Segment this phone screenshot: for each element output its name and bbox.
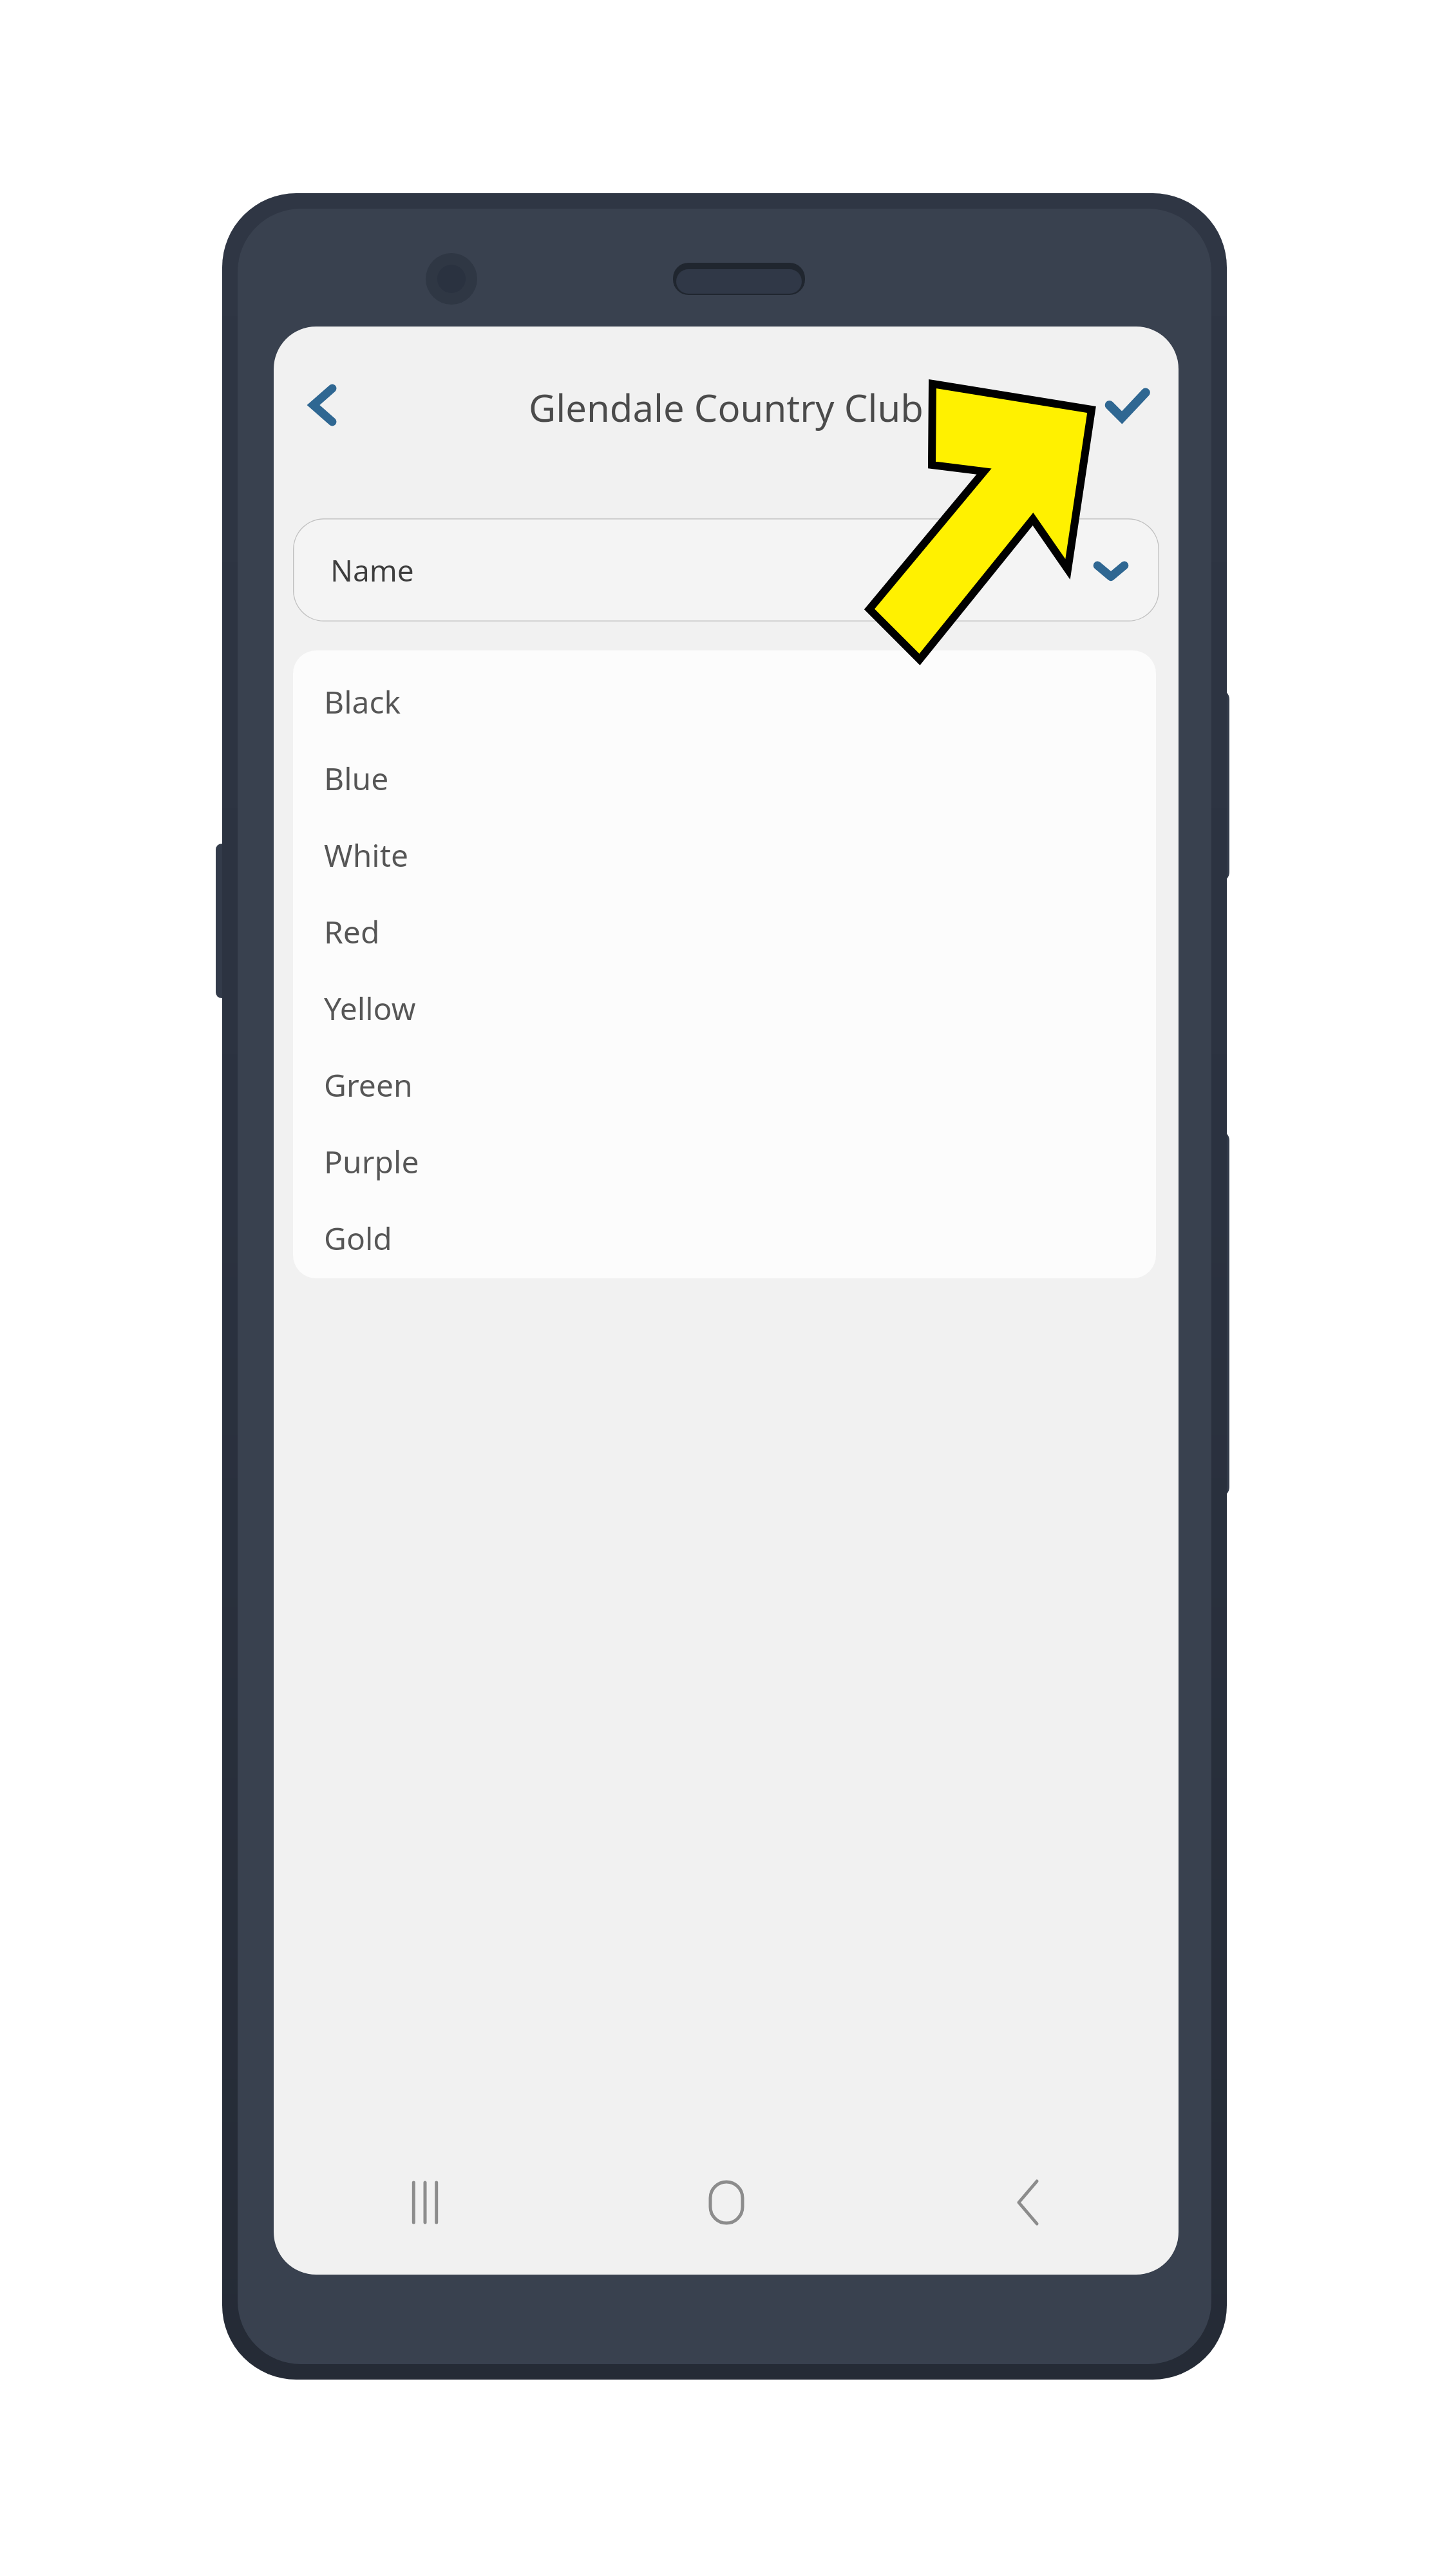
- staticText: Blue: [324, 757, 389, 799]
- staticText: Name: [330, 550, 414, 591]
- button[interactable]: White: [293, 817, 1156, 893]
- staticText: Red: [324, 911, 380, 952]
- button[interactable]: Green: [293, 1046, 1156, 1123]
- button[interactable]: Home: [576, 2130, 877, 2275]
- button[interactable]: Yellow: [293, 970, 1156, 1046]
- button[interactable]: Red: [293, 893, 1156, 970]
- staticText: Yellow: [324, 987, 416, 1029]
- button[interactable]: Back: [877, 2130, 1179, 2275]
- button[interactable]: Recent apps: [274, 2130, 576, 2275]
- button[interactable]: Back: [279, 360, 369, 450]
- staticText: Gold: [324, 1217, 392, 1259]
- button[interactable]: Gold: [293, 1200, 1156, 1276]
- staticText: Green: [324, 1064, 413, 1106]
- button[interactable]: Confirm: [1082, 360, 1172, 450]
- button[interactable]: Name: [293, 518, 1159, 621]
- staticText: Glendale Country Club: [529, 382, 923, 433]
- staticText: Black: [324, 681, 401, 723]
- button[interactable]: Purple: [293, 1123, 1156, 1200]
- button[interactable]: Black: [293, 663, 1156, 740]
- staticText: White: [324, 834, 409, 876]
- button[interactable]: Blue: [293, 740, 1156, 817]
- staticText: Purple: [324, 1141, 419, 1182]
